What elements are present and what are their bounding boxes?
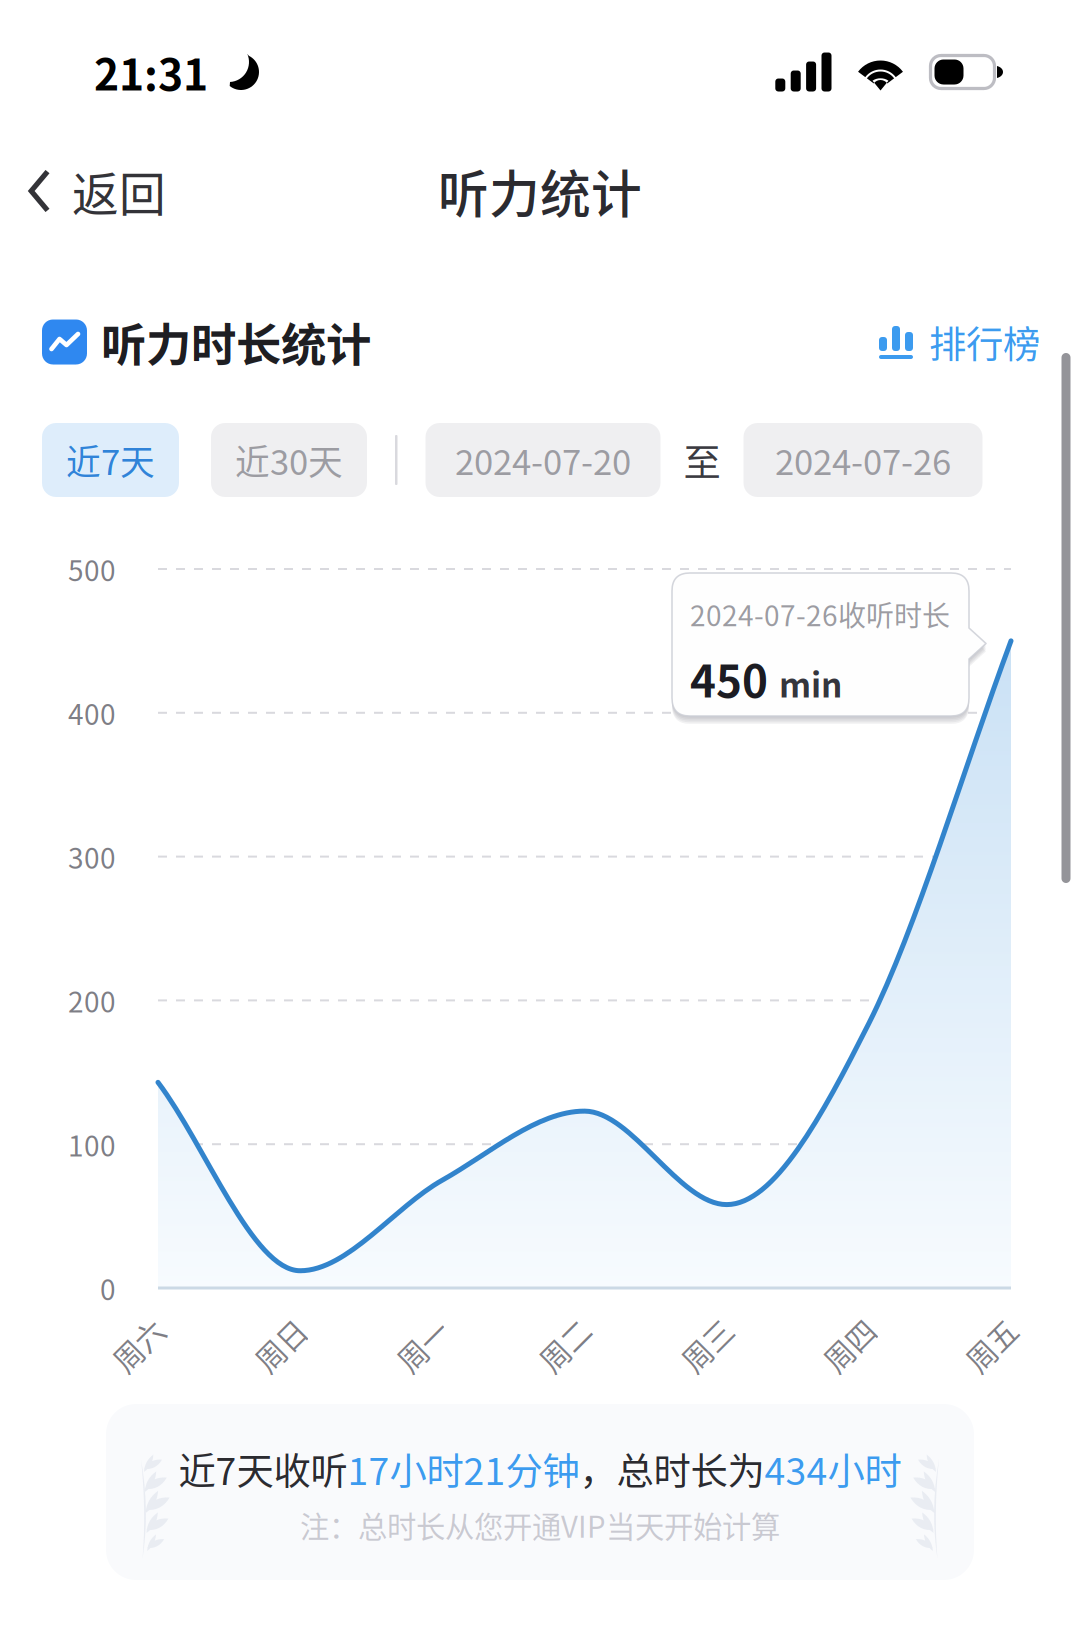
staticText: 0 [100,1268,116,1308]
staticText: 听力时长统计 [101,309,371,375]
staticText: 21:31 [94,41,208,103]
staticText: 450 [690,646,768,710]
button[interactable]: 排行榜 [861,301,1040,383]
staticText: 2024-07-26 [775,435,951,485]
staticText: 434小时 [764,1442,901,1496]
staticText: 近7天 [66,435,155,485]
button[interactable]: 返回 [0,135,188,247]
staticText: 100 [68,1124,116,1164]
staticText: 周四 [820,1324,878,1366]
staticText: 近7天收听 [178,1442,347,1496]
staticText: ，总时长为 [579,1442,764,1496]
button[interactable]: 2024-07-26 [743,423,982,497]
staticText: 排行榜 [929,315,1040,369]
button[interactable]: 近7天 [42,423,179,497]
staticText: 听力统计 [438,154,642,228]
staticText: 300 [68,836,116,877]
staticText: 200 [68,980,116,1021]
staticText: 注：总时长从您开通VIP当天开始计算 [300,1504,780,1546]
staticText: 2024-07-26收听时长 [690,594,950,634]
button[interactable]: 2024-07-20 [425,423,660,497]
staticText: 17小时21分钟 [347,1442,579,1496]
staticText: 2024-07-20 [455,435,631,485]
staticText: 周三 [678,1324,736,1366]
staticText: 500 [68,549,116,589]
staticText: 返回 [72,157,166,225]
staticText: 至 [683,433,720,487]
staticText: min [779,659,842,707]
staticText: 周一 [393,1324,451,1366]
staticText: 周五 [962,1324,1020,1366]
staticText: 400 [68,692,116,733]
staticText: 周六 [109,1324,167,1366]
staticText: 周日 [251,1324,309,1366]
staticText: 近30天 [235,435,343,485]
button[interactable]: 近30天 [211,423,367,497]
staticText: 周二 [535,1324,593,1366]
